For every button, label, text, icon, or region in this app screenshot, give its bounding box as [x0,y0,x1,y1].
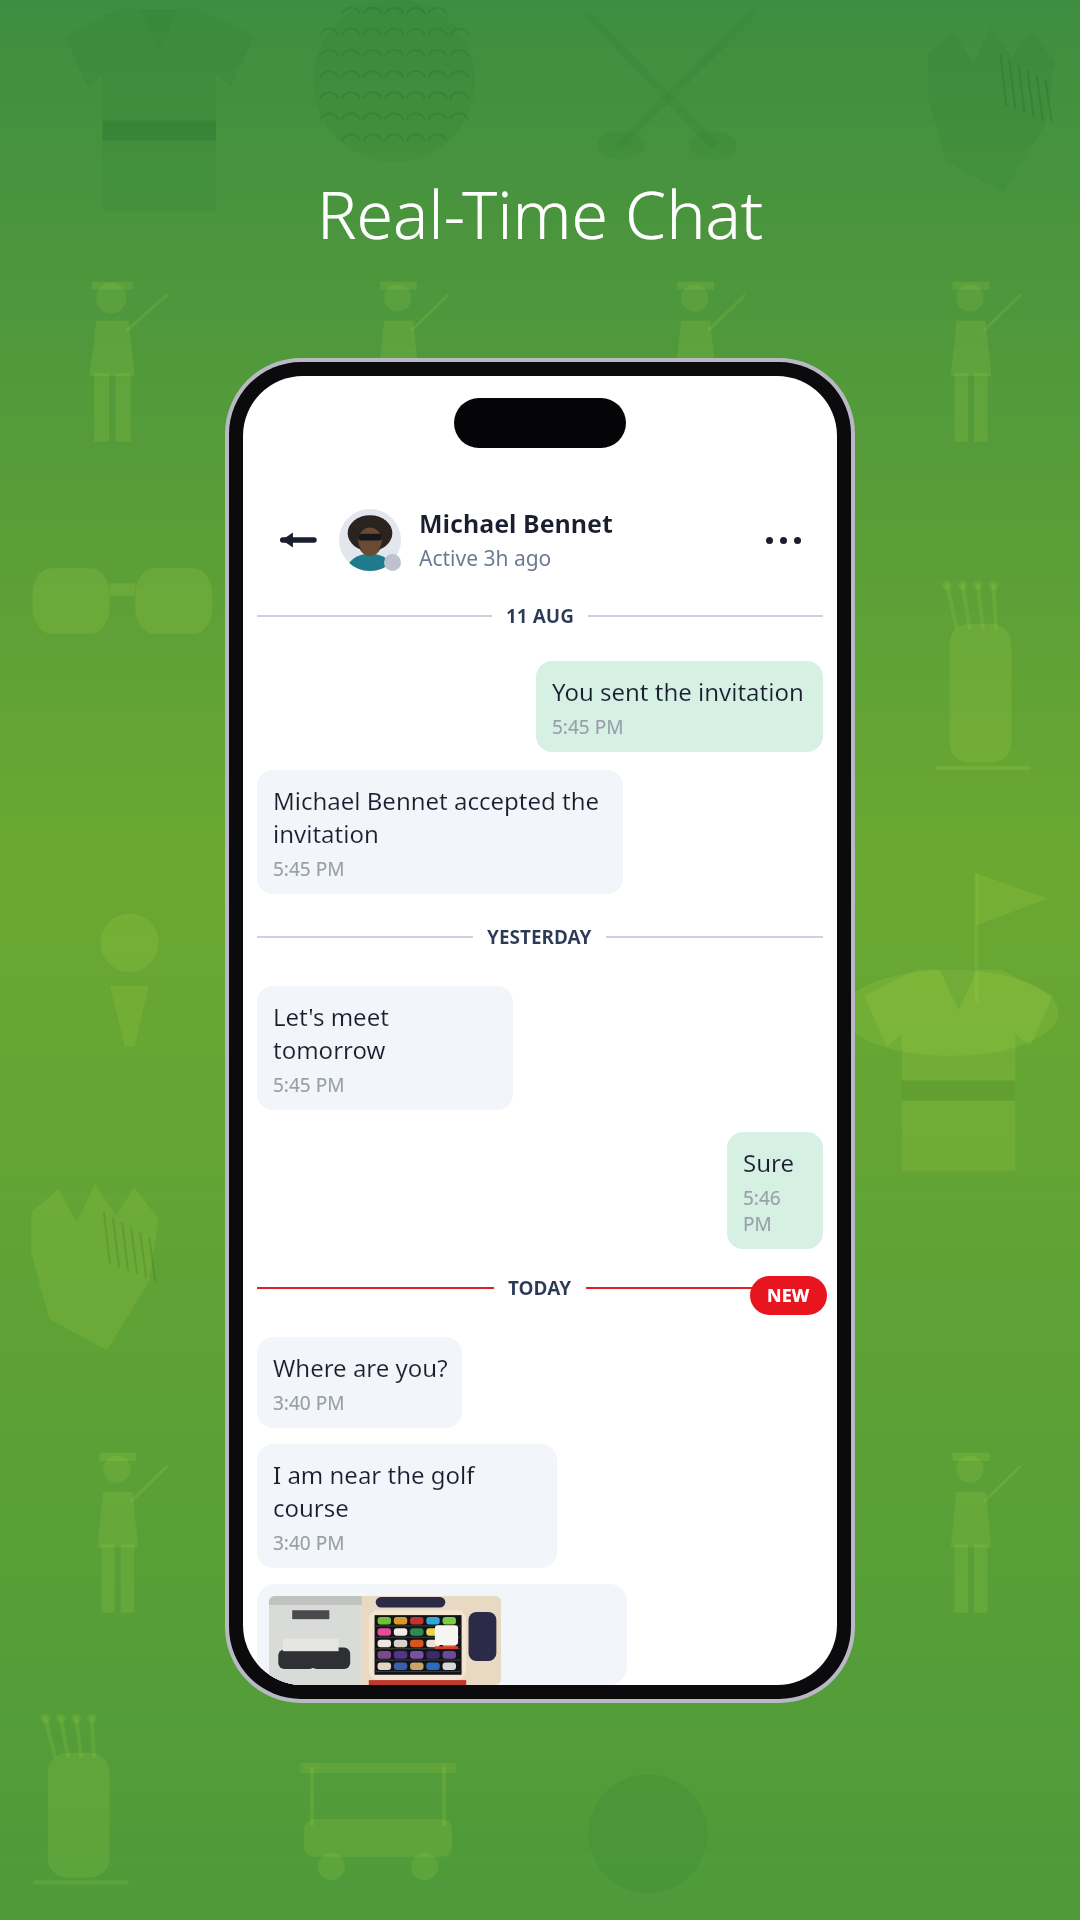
staticText: Let's meet tomorrow [273,1000,499,1066]
staticText: Michael Bennet accepted the invitation [273,784,600,850]
staticText: 5:46 PM [743,1185,809,1237]
staticText: Michael Bennet [419,506,613,540]
button[interactable] [257,1584,627,1685]
staticText: 3:40 PM [273,1390,345,1416]
button[interactable]: Let's meet tomorrow [257,986,513,1110]
staticText: Real-Time Chat [317,168,764,258]
staticText: 5:45 PM [273,1072,345,1098]
staticText: 5:45 PM [552,714,624,740]
staticText: 3:40 PM [273,1530,345,1556]
button[interactable]: Back [271,514,323,566]
staticText: 11 AUG [506,603,574,629]
staticText: Where are you? [273,1351,448,1384]
button[interactable]: I am near the golf course [257,1444,557,1568]
staticText: Sure [743,1146,794,1179]
staticText: Active 3h ago [419,544,552,573]
staticText: TODAY [508,1275,572,1301]
button[interactable]: NEW [750,1276,827,1315]
button[interactable]: More options [757,514,809,566]
button[interactable]: Where are you? [257,1337,462,1428]
staticText: You sent the invitation [552,675,804,708]
staticText: 5:45 PM [273,856,345,882]
button[interactable]: Sure [727,1132,823,1249]
staticText: I am near the golf course [273,1458,543,1524]
staticText: NEW [767,1283,810,1308]
button[interactable]: You sent the invitation [536,661,823,752]
staticText: YESTERDAY [487,924,592,950]
button[interactable]: Michael Bennet accepted the invitation [257,770,623,894]
